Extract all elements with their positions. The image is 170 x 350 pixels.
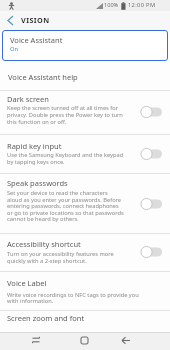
staticText: VISION [21,15,50,25]
staticText: Screen zoom and font [7,313,85,323]
button[interactable] [0,90,170,134]
button[interactable] [6,15,15,26]
staticText: aloud as you enter your passwords. Befor… [7,196,122,204]
staticText: Speak passwords [7,178,68,188]
staticText: entering passwords, connect headphones [7,202,119,210]
staticText: by tapping keys once. [7,158,65,166]
staticText: Voice Assistant help [8,72,78,82]
staticText: Turn on your accessibility features more [7,250,114,258]
staticText: Voice Label [7,278,47,288]
staticText: 12:00 PM [128,1,156,9]
staticText: Use the Samsung Keyboard and the keypad [7,151,124,159]
button[interactable] [139,198,163,210]
staticText: Rapid key input [7,141,62,151]
staticText: 100% [104,1,119,9]
staticText: Write voice recordings to NFC tags to pr… [7,291,139,299]
staticText: cannot be heard by others. [7,215,79,223]
button[interactable] [0,310,170,332]
button[interactable] [0,271,170,309]
staticText: Voice Assistant [10,35,63,45]
button[interactable] [2,30,168,61]
button[interactable] [80,336,89,345]
button[interactable] [139,148,163,160]
button[interactable] [0,173,170,232]
staticText: Keep the screen turned off at all times … [7,104,119,112]
button[interactable] [139,246,163,258]
button[interactable] [0,61,170,89]
staticText: or go to private locations so that passw… [7,209,124,217]
button[interactable] [0,233,170,270]
button[interactable] [121,336,131,345]
staticText: Dark screen [7,94,49,104]
staticText: On [10,45,19,53]
staticText: Set your device to read the characters [7,189,108,197]
staticText: quickly with a 2-step shortcut. [7,257,87,265]
button[interactable] [31,336,41,344]
staticText: Accessibility shortcut [7,239,81,249]
button[interactable] [0,134,170,173]
staticText: with information. [7,297,54,305]
staticText: privacy. Double press the Power key to t… [7,111,123,119]
staticText: this function on or off. [7,118,67,126]
button[interactable] [139,106,163,118]
